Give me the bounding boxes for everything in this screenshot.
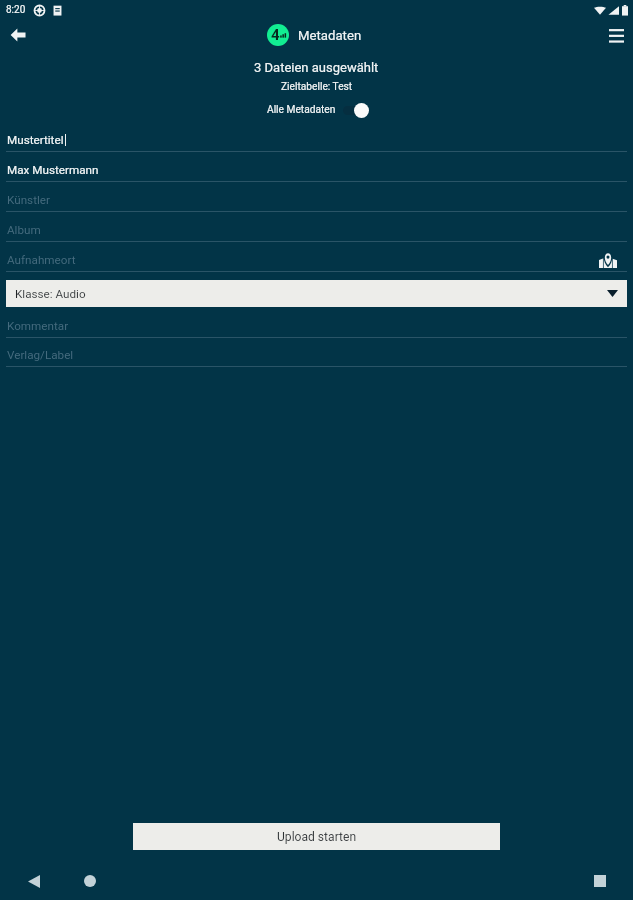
button[interactable]: Mustertitel [0, 126, 633, 152]
staticText: Kommentar [7, 319, 69, 333]
button[interactable]: Recent apps [587, 868, 613, 894]
button[interactable]: Künstler [0, 186, 633, 212]
staticText: Max Mustermann [7, 163, 99, 177]
staticText: 8:20 [6, 4, 26, 16]
button[interactable]: Home [77, 868, 103, 894]
staticText: 4 [271, 26, 280, 44]
button[interactable]: Verlag/Label [0, 341, 633, 367]
button[interactable]: Album [0, 216, 633, 242]
staticText: Aufnahmeort [7, 253, 76, 267]
button[interactable]: Max Mustermann [0, 156, 633, 182]
staticText: Mustertitel [7, 133, 64, 147]
button[interactable]: Back [5, 22, 31, 48]
button[interactable]: Alle Metadaten [267, 102, 369, 118]
button[interactable]: Upload starten [133, 823, 500, 850]
button[interactable]: Pick location on map [597, 249, 619, 271]
button[interactable]: Klasse: Audio [6, 280, 627, 307]
button[interactable]: Kommentar [0, 312, 633, 338]
button[interactable]: Aufnahmeort [0, 246, 633, 272]
staticText: Upload starten [277, 830, 357, 844]
staticText: Verlag/Label [7, 348, 74, 362]
staticText: Zieltabelle: Test [281, 81, 353, 93]
staticText: 3 Dateien ausgewählt [254, 60, 379, 75]
staticText: Klasse: Audio [15, 287, 86, 301]
button[interactable]: Back [21, 868, 47, 894]
button[interactable]: Menu [603, 22, 629, 48]
staticText: Künstler [7, 193, 50, 207]
staticText: Album [7, 223, 41, 237]
staticText: Metadaten [298, 28, 362, 43]
staticText: Alle Metadaten [267, 104, 336, 116]
